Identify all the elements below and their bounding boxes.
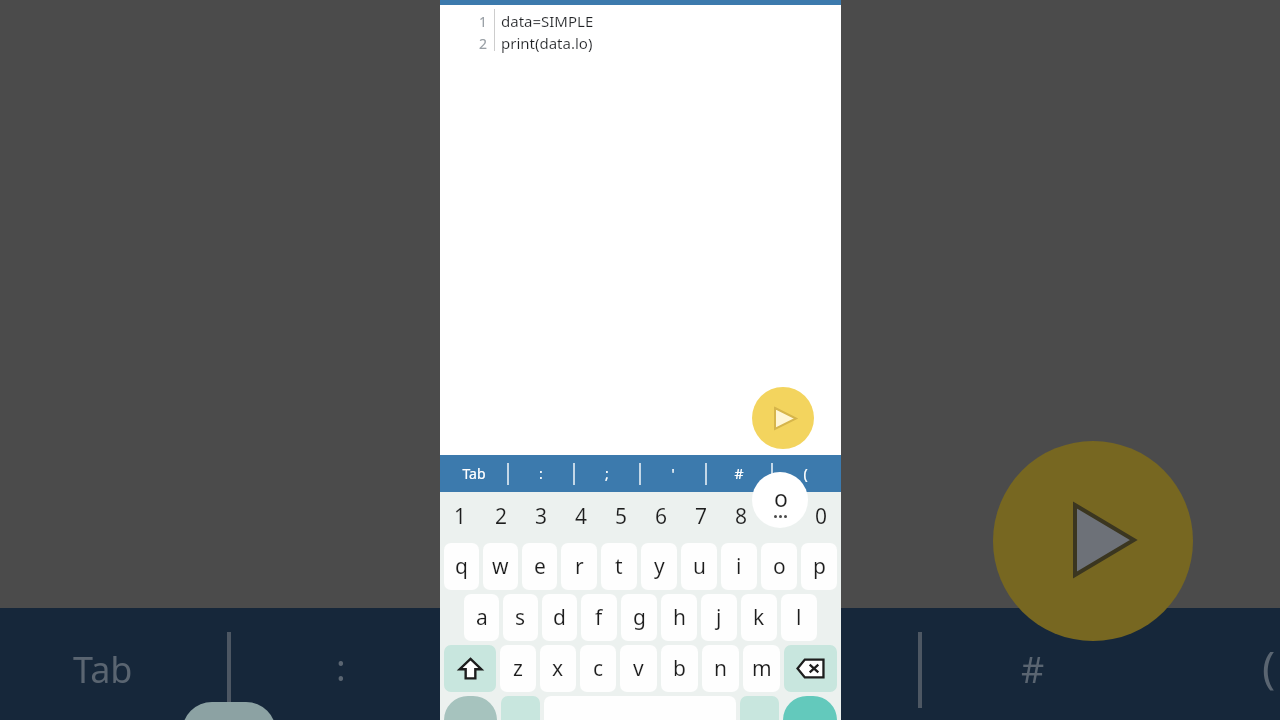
staticText: 5 [615, 502, 628, 531]
button[interactable]: Tab [440, 455, 507, 492]
staticText: # [734, 464, 744, 483]
staticText: 3 [535, 502, 548, 531]
staticText: m [752, 654, 772, 683]
button[interactable]: n [702, 645, 739, 692]
staticText: j [716, 603, 722, 632]
button[interactable]: e [522, 543, 557, 590]
button[interactable]: t [601, 543, 637, 590]
staticText: 1 [454, 502, 467, 531]
staticText: x [552, 654, 564, 683]
button[interactable]: Run [752, 387, 814, 449]
button[interactable]: Symbols [444, 696, 497, 720]
button[interactable]: Backspace [784, 645, 837, 692]
staticText: z [513, 654, 523, 683]
button[interactable]: h [661, 594, 697, 641]
button[interactable]: 5 [601, 492, 641, 540]
staticText: 9 [775, 502, 788, 531]
button[interactable]: m [743, 645, 780, 692]
button[interactable]: Period [740, 696, 779, 720]
button[interactable]: # [707, 455, 771, 492]
staticText: 1 [479, 12, 488, 31]
staticText: 4 [575, 502, 588, 531]
button[interactable]: 2 [481, 492, 521, 540]
staticText: ( [803, 464, 808, 483]
staticText: data=SIMPLE [501, 11, 594, 31]
staticText: r [575, 552, 584, 581]
staticText: 7 [695, 502, 708, 531]
staticText: f [595, 603, 603, 632]
button[interactable]: b [661, 645, 698, 692]
button[interactable]: ; [575, 455, 639, 492]
button[interactable]: r [561, 543, 597, 590]
staticText: 8 [735, 502, 748, 531]
staticText: 0 [815, 502, 828, 531]
button[interactable]: x [540, 645, 576, 692]
staticText: e [534, 552, 546, 581]
button[interactable]: 1 [440, 492, 481, 540]
button[interactable]: s [503, 594, 538, 641]
staticText: p [813, 552, 826, 581]
button[interactable]: 3 [521, 492, 561, 540]
staticText: # [1021, 645, 1045, 694]
staticText: i [736, 552, 742, 581]
button[interactable]: 0 [801, 492, 841, 540]
staticText: a [476, 603, 488, 632]
staticText: l [796, 603, 802, 632]
staticText: : [539, 464, 543, 483]
staticText: 2 [479, 34, 488, 53]
button[interactable]: j [701, 594, 737, 641]
button[interactable]: i [721, 543, 757, 590]
staticText: 6 [655, 502, 668, 531]
button[interactable]: : [509, 455, 573, 492]
button[interactable]: u [681, 543, 717, 590]
staticText: print(data.lo) [501, 33, 593, 53]
button[interactable]: 4 [561, 492, 601, 540]
button[interactable]: 8 [721, 492, 761, 540]
staticText: s [515, 603, 526, 632]
button[interactable]: z [500, 645, 536, 692]
button[interactable]: o [761, 543, 797, 590]
staticText: o [774, 482, 788, 513]
button[interactable]: 7 [681, 492, 721, 540]
button[interactable]: Shift [444, 645, 496, 692]
staticText: 2 [495, 502, 508, 531]
button[interactable]: g [621, 594, 657, 641]
staticText: h [673, 603, 686, 632]
button[interactable]: k [741, 594, 777, 641]
staticText: b [673, 654, 686, 683]
staticText: y [654, 552, 665, 581]
button[interactable]: 9 [761, 492, 801, 540]
staticText: u [693, 552, 706, 581]
staticText: : [336, 643, 346, 692]
button[interactable]: ' [641, 455, 705, 492]
staticText: ' [671, 464, 675, 483]
staticText: c [593, 654, 604, 683]
button[interactable]: Comma [501, 696, 540, 720]
staticText: k [753, 603, 765, 632]
staticText: ; [605, 464, 609, 483]
button[interactable]: p [801, 543, 837, 590]
staticText: ( [1262, 636, 1276, 696]
button[interactable]: f [581, 594, 617, 641]
staticText: v [633, 654, 644, 683]
button[interactable]: v [620, 645, 657, 692]
staticText: Tab [73, 645, 133, 694]
button[interactable]: a [464, 594, 499, 641]
button[interactable]: q [444, 543, 479, 590]
staticText: d [553, 603, 566, 632]
staticText: n [714, 654, 727, 683]
button[interactable]: c [580, 645, 616, 692]
button[interactable]: l [781, 594, 817, 641]
button[interactable]: ( [773, 455, 837, 492]
staticText: Tab [462, 464, 486, 483]
button[interactable]: d [542, 594, 577, 641]
button[interactable]: 6 [641, 492, 681, 540]
button[interactable]: w [483, 543, 518, 590]
button[interactable]: y [641, 543, 677, 590]
staticText: g [633, 603, 646, 632]
staticText: t [615, 552, 623, 581]
staticText: w [492, 552, 509, 581]
button[interactable]: Enter [783, 696, 837, 720]
staticText: q [455, 552, 468, 581]
